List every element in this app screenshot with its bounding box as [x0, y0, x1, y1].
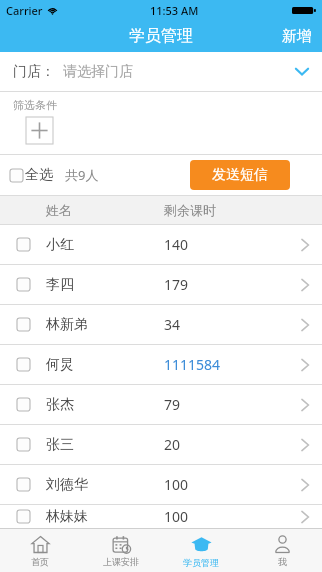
button[interactable]: 首页: [0, 529, 80, 572]
staticText: 34: [164, 315, 288, 334]
staticText: 门店：: [13, 63, 55, 81]
staticText: 20: [164, 435, 288, 454]
staticText: 11:53 AM: [150, 3, 199, 18]
button[interactable]: 学员管理: [161, 529, 241, 572]
button[interactable]: 添加筛选条件: [26, 117, 53, 144]
staticText: 首页: [31, 556, 49, 567]
button[interactable]: 我: [242, 529, 322, 572]
staticText: 张三: [46, 436, 164, 454]
button[interactable]: 新增: [272, 20, 322, 52]
staticText: 请选择门店: [63, 63, 133, 81]
staticText: 林新弟: [46, 316, 164, 334]
staticText: 上课安排: [103, 556, 139, 567]
staticText: 新增: [282, 27, 312, 46]
staticText: 姓名: [46, 202, 164, 218]
button[interactable]: 刘德华: [0, 465, 322, 504]
staticText: 学员管理: [129, 26, 193, 46]
staticText: Carrier: [6, 3, 43, 18]
staticText: 179: [164, 275, 288, 294]
staticText: 79: [164, 395, 288, 414]
staticText: 学员管理: [183, 557, 219, 568]
staticText: 1111584: [164, 355, 288, 374]
button[interactable]: 何炅: [0, 345, 322, 384]
staticText: 李四: [46, 276, 164, 294]
button[interactable]: 门店：: [0, 52, 322, 91]
staticText: 何炅: [46, 356, 164, 374]
staticText: 张杰: [46, 396, 164, 414]
staticText: 筛选条件: [13, 98, 57, 112]
staticText: 共9人: [65, 166, 99, 184]
staticText: 剩余课时: [164, 202, 288, 218]
staticText: 发送短信: [212, 166, 268, 184]
button[interactable]: 林新弟: [0, 305, 322, 344]
button[interactable]: 张三: [0, 425, 322, 464]
staticText: 140: [164, 235, 288, 254]
button[interactable]: 小红: [0, 225, 322, 264]
staticText: 林妹妹: [46, 508, 164, 526]
staticText: 全选: [25, 166, 53, 184]
button[interactable]: 全选: [0, 162, 57, 188]
staticText: 100: [164, 507, 288, 526]
button[interactable]: 林妹妹: [0, 505, 322, 528]
staticText: 小红: [46, 236, 164, 254]
staticText: 100: [164, 475, 288, 494]
button[interactable]: 张杰: [0, 385, 322, 424]
button[interactable]: 上课安排: [81, 529, 161, 572]
staticText: 刘德华: [46, 476, 164, 494]
staticText: 我: [278, 556, 287, 567]
button[interactable]: 李四: [0, 265, 322, 304]
button[interactable]: 发送短信: [190, 160, 290, 190]
